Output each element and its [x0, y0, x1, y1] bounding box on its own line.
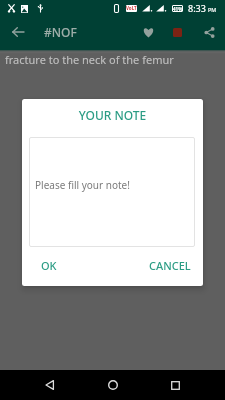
staticText: CANCEL: [149, 258, 191, 273]
button[interactable]: Favourite: [134, 18, 162, 46]
button[interactable]: Back: [4, 18, 32, 46]
staticText: VoLTE: [126, 5, 137, 12]
staticText: PM: [208, 6, 217, 13]
button[interactable]: Back: [36, 371, 64, 399]
staticText: Please fill your note!: [35, 178, 130, 192]
button[interactable]: Home: [99, 371, 127, 399]
staticText: YOUR NOTE: [22, 107, 203, 123]
staticText: OK: [41, 258, 57, 273]
button[interactable]: Share: [195, 18, 223, 46]
staticText: 41%: [173, 6, 183, 12]
button[interactable]: CANCEL: [141, 254, 199, 277]
button[interactable]: Recents: [161, 371, 189, 399]
button[interactable]: Bookmark: [163, 18, 191, 46]
staticText: 8:33: [188, 2, 206, 14]
button[interactable]: OK: [33, 254, 65, 277]
staticText: #NOF: [44, 24, 77, 40]
staticText: fracture to the neck of the femur: [5, 52, 174, 67]
